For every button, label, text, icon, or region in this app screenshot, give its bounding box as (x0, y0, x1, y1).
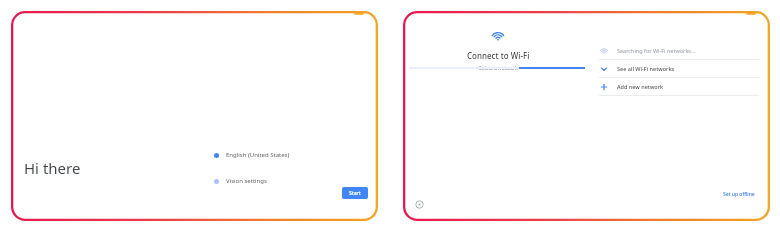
button[interactable]: Set up offline (721, 189, 757, 200)
staticText: Start (349, 190, 361, 197)
staticText: Hi there (24, 158, 81, 178)
staticText: Connect to Wi-Fi (467, 50, 530, 61)
button[interactable]: Start (342, 187, 368, 199)
button[interactable]: See all Wi-Fi networks (599, 60, 759, 78)
button[interactable]: Accessibility (415, 200, 424, 209)
staticText: English (United States) (226, 151, 290, 159)
button[interactable]: English (United States) (214, 150, 290, 160)
staticText: See all Wi-Fi networks (617, 65, 675, 72)
button[interactable]: Searching for Wi-Fi networks... (599, 42, 759, 60)
button[interactable]: Vision settings (214, 176, 267, 186)
staticText: Select a network (479, 65, 518, 72)
staticText: Add new network (617, 83, 664, 90)
button[interactable]: Add new network (599, 78, 759, 96)
staticText: Set up offline (723, 191, 755, 198)
staticText: Searching for Wi-Fi networks... (617, 47, 696, 54)
staticText: Vision settings (226, 177, 267, 185)
